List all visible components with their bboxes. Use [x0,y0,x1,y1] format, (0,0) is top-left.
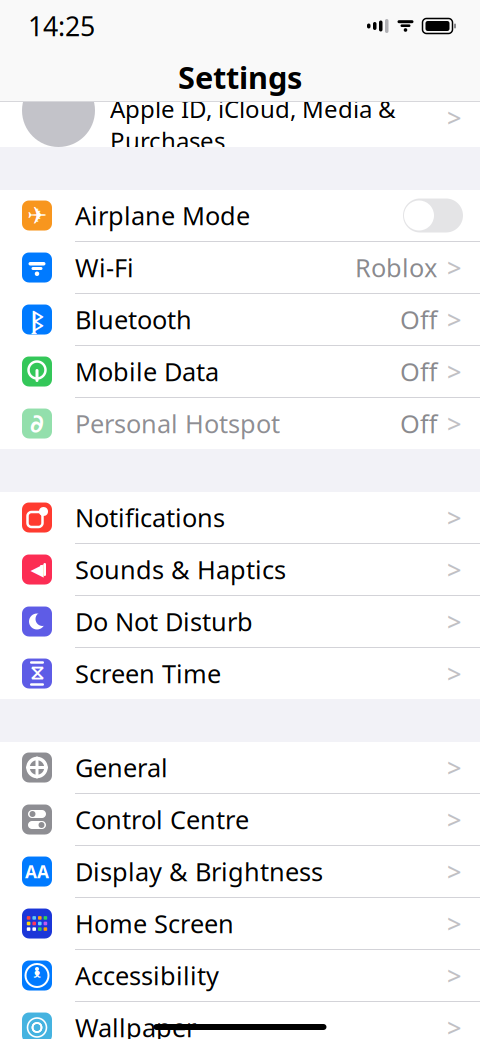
button[interactable]: Wallpaper [0,1002,480,1039]
staticText: Do Not Disturb [75,605,253,638]
staticText: > [447,407,461,440]
staticText: Roblox [355,251,437,284]
staticText: ᵜ [33,961,40,990]
button[interactable]: Apple ID, iCloud, Media & Purchases [0,102,480,147]
staticText: ᛒ [30,304,43,335]
staticText: Personal Hotspot [75,407,280,440]
button[interactable]: Notifications [0,492,480,543]
button[interactable]: ◀ [0,544,480,595]
staticText: > [447,303,461,336]
button[interactable]: ⧖ [0,648,480,699]
staticText: > [447,251,461,284]
staticText: 14:25 [28,8,95,44]
staticText: > [447,657,461,690]
button[interactable]: Settings [0,52,480,102]
staticText: AA [25,860,49,883]
staticText: > [447,907,461,940]
staticText: > [447,501,461,534]
staticText: > [447,355,461,388]
staticText: > [447,101,461,134]
button[interactable]: Do Not Disturb [0,596,480,647]
button[interactable]: AA [0,846,480,897]
staticText: Mobile Data [75,355,219,388]
staticText: Accessibility [75,959,219,992]
staticText: ⧖ [30,664,44,683]
staticText: > [447,751,461,784]
staticText: > [447,553,461,586]
staticText: Airplane Mode [75,199,250,232]
staticText: Off [400,303,437,336]
staticText: Bluetooth [75,303,192,336]
staticText: Off [400,355,437,388]
staticText: > [447,605,461,638]
button[interactable]: Home Screen [0,898,480,949]
button[interactable]: Control Centre [0,794,480,845]
staticText: > [447,803,461,836]
staticText: Control Centre [75,803,249,836]
button[interactable]: ∂ [0,398,480,449]
staticText: Wallpaper [75,1011,196,1039]
staticText: ✈ [27,202,47,229]
button[interactable]: General [0,742,480,793]
button[interactable]: Mobile Data [0,346,480,397]
staticText: Settings [178,57,302,97]
staticText: Apple ID, iCloud, Media & Purchases [110,93,396,156]
staticText: Sounds & Haptics [75,553,286,586]
button[interactable]: ✈ [0,190,480,241]
staticText: Display & Brightness [75,855,323,888]
staticText: > [447,855,461,888]
staticText: ◀ [30,560,43,579]
button[interactable]: ᛒ [0,294,480,345]
staticText: > [447,1011,461,1039]
staticText: Notifications [75,501,225,534]
staticText: > [447,959,461,992]
button[interactable]: ᵜ [0,950,480,1001]
staticText: Screen Time [75,657,221,690]
button[interactable]: Wi-Fi [0,242,480,293]
staticText: Off [400,407,437,440]
staticText: Home Screen [75,907,234,940]
staticText: ∂ [30,409,44,438]
staticText: General [75,751,168,784]
staticText: Wi-Fi [75,251,134,284]
